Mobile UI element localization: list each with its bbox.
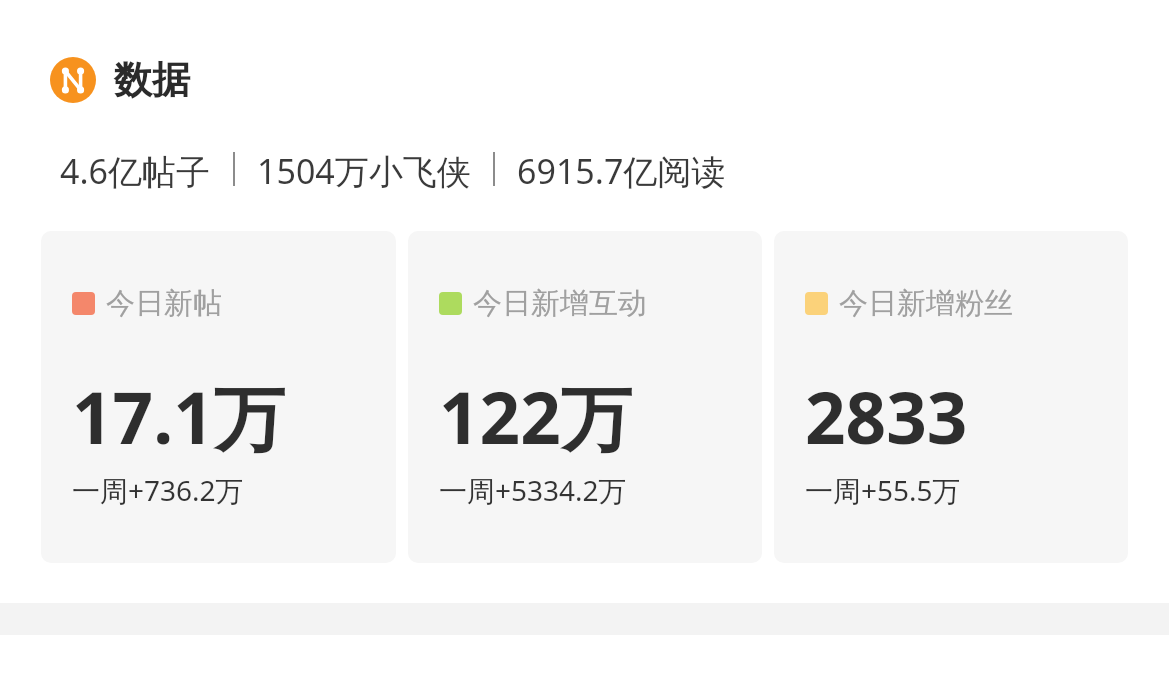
button[interactable]: 今日新增粉丝 <box>774 231 1128 563</box>
other: 数据 <box>50 57 96 103</box>
staticText: 一周+736.2万 <box>72 471 244 509</box>
staticText: 一周+55.5万 <box>805 471 961 509</box>
staticText: 今日新增互动 <box>473 285 647 322</box>
staticText: 6915.7亿阅读 <box>517 148 726 194</box>
staticText: 17.1万 <box>72 368 285 465</box>
staticText: 1504万小飞侠 <box>257 148 471 194</box>
staticText: 一周+5334.2万 <box>439 471 627 509</box>
button[interactable]: 今日新增互动 <box>408 231 762 563</box>
button[interactable]: 4.6亿帖子 <box>60 148 726 194</box>
staticText: 2833 <box>805 368 968 465</box>
staticText: 今日新帖 <box>106 285 222 322</box>
staticText: 数据 <box>114 56 190 104</box>
staticText: 4.6亿帖子 <box>60 148 211 194</box>
button[interactable]: 数据 <box>50 56 190 104</box>
button[interactable]: 今日新帖 <box>41 231 396 563</box>
staticText: 122万 <box>439 368 632 465</box>
staticText: 今日新增粉丝 <box>839 285 1013 322</box>
